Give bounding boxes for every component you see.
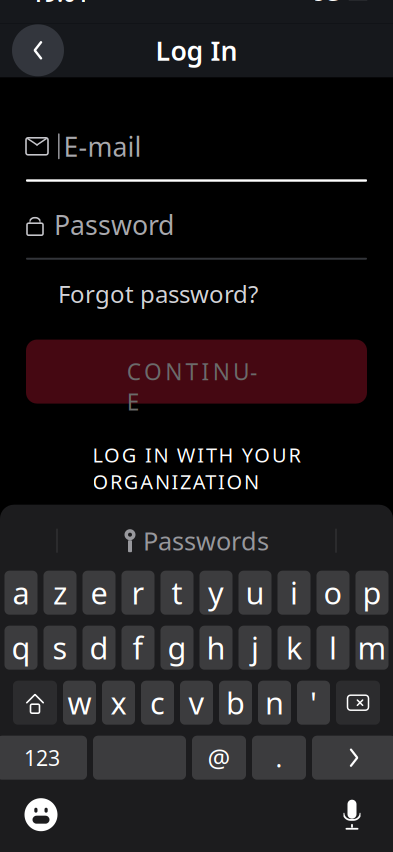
button[interactable]: Passwords [114,520,279,561]
button[interactable]: a [4,571,37,615]
staticText: a [12,572,29,613]
button[interactable]: j [238,626,271,670]
button[interactable]: Go [312,736,393,780]
button[interactable]: f [121,626,154,670]
staticText: ' [310,682,317,723]
staticText: @ [207,741,230,774]
staticText: z [53,572,67,613]
button[interactable]: s [43,626,76,670]
button[interactable]: Delete [336,681,380,725]
button[interactable]: z [43,571,76,615]
staticText: e [90,572,107,613]
staticText: x [110,682,126,723]
button[interactable]: @ [192,736,246,780]
staticText: u [245,572,264,613]
button[interactable]: CONTINUE [26,340,367,404]
button[interactable]: ' [297,681,330,725]
button[interactable]: o [316,571,349,615]
button[interactable]: m [355,626,388,670]
staticText: i [290,572,298,613]
button[interactable]: b [219,681,252,725]
button[interactable]: v [180,681,213,725]
staticText: CONTINUE [127,356,266,387]
button[interactable]: LOG IN WITH YOUR ORGANIZATION [26,432,367,505]
staticText: r [131,572,144,613]
staticText: j [251,627,259,668]
button[interactable]: t [160,571,193,615]
staticText: s [52,627,67,668]
staticText: v [188,682,204,723]
button[interactable]: g [160,626,193,670]
staticText: Forgot password? [58,278,258,310]
staticText: Passwords [143,524,269,557]
staticText: d [89,627,108,668]
button[interactable]: n [258,681,291,725]
button[interactable]: Emoji [22,796,60,834]
button[interactable]: d [82,626,115,670]
staticText: l [329,627,337,668]
button[interactable]: Password [26,204,367,260]
button[interactable]: q [4,626,37,670]
staticText: LOG IN WITH YOUR ORGANIZATION [92,442,300,495]
staticText: t [171,572,182,613]
staticText: Password [54,207,174,242]
staticText: E-mail [64,129,142,164]
button[interactable]: x [102,681,135,725]
button[interactable]: k [277,626,310,670]
staticText: 123 [24,743,60,772]
button[interactable]: p [355,571,388,615]
button[interactable]: y [199,571,232,615]
button[interactable]: Shift [13,681,57,725]
button[interactable]: 123 [0,736,87,780]
staticText: k [286,627,302,668]
button[interactable]: c [141,681,174,725]
staticText: 5G [313,0,339,7]
staticText: c [150,682,165,723]
staticText: p [362,572,381,613]
button[interactable]: h [199,626,232,670]
staticText: g [167,627,186,668]
button[interactable]: Dictation [333,796,371,834]
staticText: n [265,682,284,723]
button[interactable]: r [121,571,154,615]
staticText: f [132,627,143,668]
staticText: w [67,682,91,723]
staticText: q [11,627,30,668]
staticText: h [206,627,225,668]
button[interactable]: u [238,571,271,615]
button[interactable]: E-mail [26,125,367,182]
button[interactable]: Back [12,24,64,76]
staticText: 19:01 [31,0,89,8]
staticText: o [323,572,342,613]
button[interactable]: . [252,736,306,780]
staticText: . [275,741,282,774]
staticText: m [357,627,386,668]
button[interactable]: w [63,681,96,725]
staticText: Log In [155,33,237,68]
button[interactable]: e [82,571,115,615]
button[interactable]: i [277,571,310,615]
staticText: y [208,572,224,613]
button[interactable]: l [316,626,349,670]
staticText: b [226,682,245,723]
button[interactable]: Forgot password? [58,272,258,316]
